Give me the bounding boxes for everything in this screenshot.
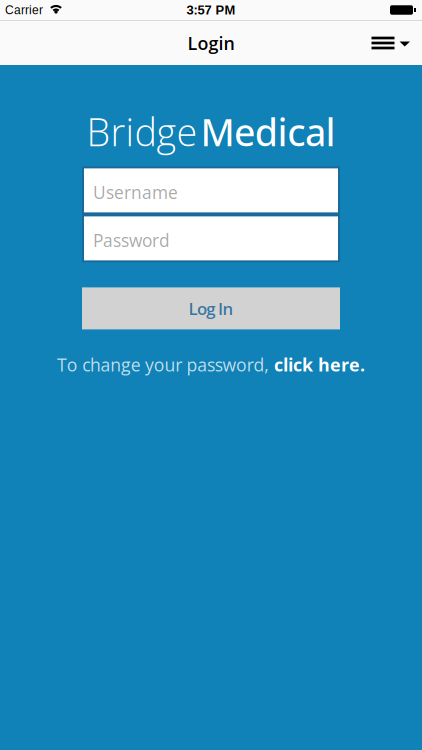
staticText: Medical xyxy=(200,106,336,157)
staticText: Password xyxy=(93,229,170,252)
button[interactable]: Log In xyxy=(82,287,340,329)
staticText: Carrier xyxy=(5,3,43,17)
staticText: Bridge xyxy=(86,106,197,157)
staticText: 3:57 PM xyxy=(186,3,235,17)
staticText: Login xyxy=(187,31,234,55)
staticText: click here. xyxy=(274,352,365,377)
button[interactable]: Password xyxy=(84,216,338,260)
staticText: To change your password, xyxy=(57,353,274,377)
staticText: Username xyxy=(93,181,178,204)
button[interactable]: Menu xyxy=(363,29,422,57)
button[interactable]: Username xyxy=(84,168,338,212)
staticText: Log In xyxy=(188,297,233,320)
button[interactable]: click here. xyxy=(274,352,365,377)
